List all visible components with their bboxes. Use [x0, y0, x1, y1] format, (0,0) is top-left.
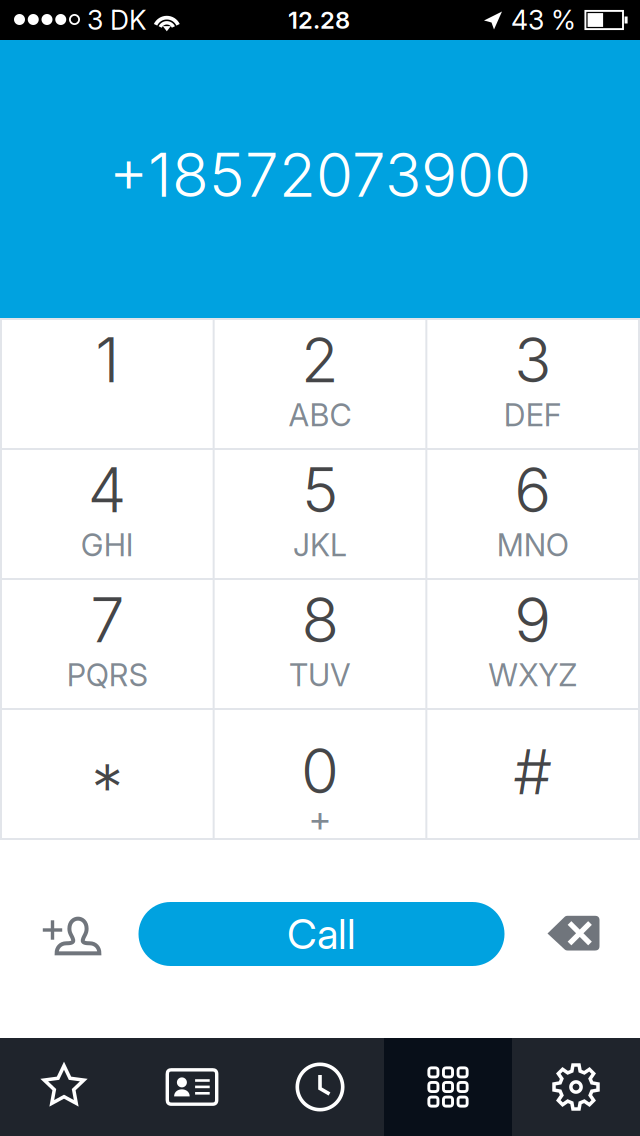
button[interactable]: # [427, 710, 638, 838]
button[interactable]: 6 [427, 450, 638, 578]
staticText: 12.28 [288, 5, 350, 34]
button[interactable]: Keypad [384, 1038, 512, 1136]
button[interactable]: Favorites [0, 1038, 128, 1136]
button[interactable]: 4 [2, 450, 213, 578]
staticText: 4 [88, 453, 127, 527]
button[interactable]: Settings [512, 1038, 640, 1136]
staticText: ABC [288, 396, 351, 433]
staticText: Call [287, 909, 356, 959]
staticText: GHI [81, 526, 134, 563]
staticText: 0 [301, 734, 339, 808]
button[interactable]: Add contact [19, 892, 125, 972]
staticText: 8 [301, 583, 338, 657]
button[interactable]: 5 [215, 450, 425, 578]
button[interactable]: Recents [256, 1038, 384, 1136]
button[interactable]: 9 [427, 580, 638, 708]
staticText: 2 [301, 323, 339, 397]
button[interactable]: * [2, 710, 213, 838]
staticText: 3 [514, 323, 551, 397]
staticText: +18572073900 [109, 139, 531, 211]
staticText: + [308, 797, 331, 841]
button[interactable]: 0 [215, 710, 425, 838]
staticText: DEF [504, 396, 562, 433]
staticText: TUV [289, 656, 351, 693]
staticText: JKL [293, 526, 347, 563]
button[interactable]: 7 [2, 580, 213, 708]
staticText: 1 [95, 323, 119, 397]
button[interactable]: Delete [526, 894, 622, 974]
button[interactable]: 2 [215, 320, 425, 448]
staticText: WXYZ [488, 656, 577, 693]
staticText: 9 [514, 583, 551, 657]
staticText: 7 [90, 583, 124, 657]
button[interactable]: 1 [2, 320, 213, 448]
button[interactable]: 3 [427, 320, 638, 448]
staticText: 5 [302, 453, 338, 527]
staticText: 3 DK [87, 4, 147, 36]
staticText: MNO [497, 526, 569, 563]
staticText: * [91, 749, 123, 827]
button[interactable]: 8 [215, 580, 425, 708]
staticText: # [513, 735, 552, 809]
staticText: 43 % [511, 4, 576, 36]
staticText: 6 [514, 453, 551, 527]
staticText: PQRS [67, 656, 148, 693]
button[interactable]: Contacts [128, 1038, 256, 1136]
button[interactable]: Call [138, 902, 504, 966]
